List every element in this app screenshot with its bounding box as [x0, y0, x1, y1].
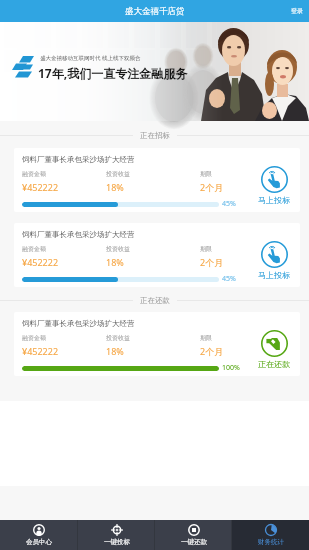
staticText: 融资金额: [22, 245, 46, 253]
staticText: 投资收益: [106, 245, 130, 253]
staticText: 2个月: [200, 181, 224, 193]
button[interactable]: 饲料厂董事长承包采沙场扩大经营: [14, 312, 300, 376]
button[interactable]: 马上投标: [248, 223, 300, 287]
staticText: 财务统计: [258, 538, 284, 546]
staticText: 正在还款: [258, 359, 290, 369]
staticText: 2个月: [200, 256, 224, 268]
staticText: 正在还款: [140, 296, 170, 305]
staticText: 期限: [200, 334, 212, 342]
staticText: ¥452222: [22, 256, 59, 268]
staticText: 饲料厂董事长承包采沙场扩大经营: [22, 155, 135, 164]
button[interactable]: 一键还款: [155, 520, 232, 550]
staticText: 饲料厂董事长承包采沙场扩大经营: [22, 319, 135, 328]
staticText: 100%: [222, 363, 240, 373]
staticText: 融资金额: [22, 334, 46, 342]
staticText: ¥452222: [22, 345, 59, 357]
staticText: 45%: [222, 274, 236, 284]
staticText: 2个月: [200, 345, 224, 357]
staticText: 正在招标: [140, 131, 170, 140]
button[interactable]: 登录: [291, 7, 303, 15]
staticText: 投资收益: [106, 334, 130, 342]
staticText: 盛大金禧移动互联网时代 线上线下双频合: [40, 54, 141, 62]
staticText: ¥452222: [22, 181, 59, 193]
staticText: 18%: [106, 181, 124, 193]
staticText: 一键投标: [104, 538, 130, 546]
button[interactable]: 正在还款: [248, 312, 300, 376]
button[interactable]: 马上投标: [248, 148, 300, 212]
staticText: 投资收益: [106, 170, 130, 178]
staticText: 盛大金禧千店贷: [125, 6, 185, 17]
staticText: 期限: [200, 245, 212, 253]
button[interactable]: 饲料厂董事长承包采沙场扩大经营: [14, 223, 300, 287]
staticText: 18%: [106, 256, 124, 268]
button[interactable]: 财务统计: [232, 520, 309, 550]
staticText: 一键还款: [181, 538, 207, 546]
staticText: 期限: [200, 170, 212, 178]
staticText: 17年,我们一直专注金融服务: [38, 65, 188, 81]
button[interactable]: 饲料厂董事长承包采沙场扩大经营: [14, 148, 300, 212]
staticText: 饲料厂董事长承包采沙场扩大经营: [22, 230, 135, 239]
staticText: 45%: [222, 199, 236, 209]
staticText: 18%: [106, 345, 124, 357]
staticText: 会员中心: [26, 538, 52, 546]
staticText: 马上投标: [258, 195, 290, 205]
button[interactable]: 一键投标: [78, 520, 155, 550]
staticText: 融资金额: [22, 170, 46, 178]
staticText: 马上投标: [258, 270, 290, 280]
button[interactable]: 会员中心: [0, 520, 78, 550]
